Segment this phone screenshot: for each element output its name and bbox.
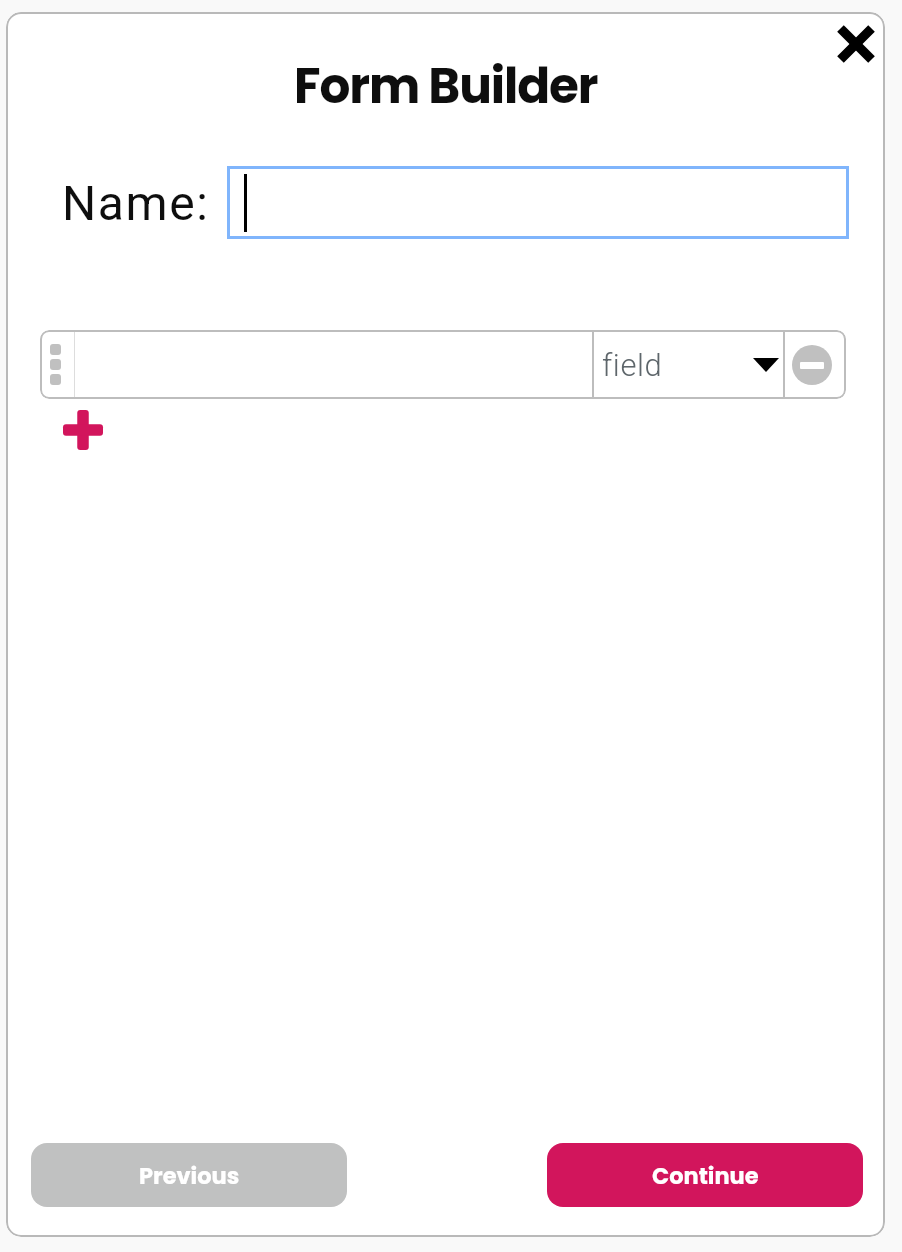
button[interactable]: Add field: [55, 402, 110, 457]
button[interactable]: Remove field: [785, 330, 846, 399]
button[interactable]: [227, 166, 849, 239]
button[interactable]: Continue: [547, 1143, 863, 1207]
staticText: Continue: [652, 1160, 759, 1191]
staticText: Form Builder: [294, 52, 598, 120]
staticText: Name:: [62, 175, 210, 231]
button[interactable]: Previous: [31, 1143, 347, 1207]
staticText: field: [602, 347, 663, 383]
button[interactable]: Close: [826, 14, 885, 74]
staticText: Previous: [139, 1160, 240, 1191]
button[interactable]: field: [594, 330, 783, 399]
button[interactable]: [75, 330, 592, 399]
button[interactable]: Reorder field: [40, 330, 74, 399]
